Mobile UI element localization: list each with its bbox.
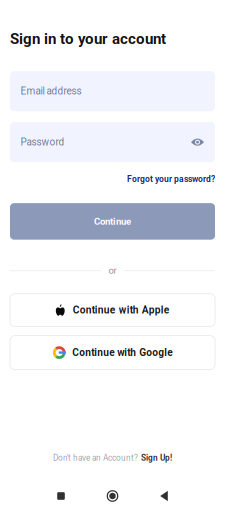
button[interactable]: Recents: [44, 484, 78, 508]
staticText: Forgot your password?: [127, 174, 215, 184]
button[interactable]: Continue: [10, 203, 215, 240]
staticText: Continue with Apple: [73, 304, 170, 316]
staticText: Sign Up!: [141, 453, 172, 463]
staticText: Continue: [94, 216, 131, 227]
button[interactable]: Continue with Google: [10, 336, 215, 370]
staticText: Email address: [20, 85, 81, 97]
button[interactable]: Home: [95, 484, 129, 508]
staticText: Password: [20, 136, 64, 148]
button[interactable]: Don't have an Account?: [0, 434, 225, 468]
staticText: Continue with Google: [72, 347, 172, 359]
staticText: Don't have an Account?: [53, 453, 138, 463]
button[interactable]: Back: [147, 484, 181, 508]
staticText: or: [108, 265, 116, 276]
staticText: Sign in to your account: [10, 30, 166, 48]
button[interactable]: Continue with Apple: [10, 294, 215, 327]
button[interactable]: Forgot your password?: [127, 174, 215, 184]
button[interactable]: Show password: [191, 138, 204, 147]
